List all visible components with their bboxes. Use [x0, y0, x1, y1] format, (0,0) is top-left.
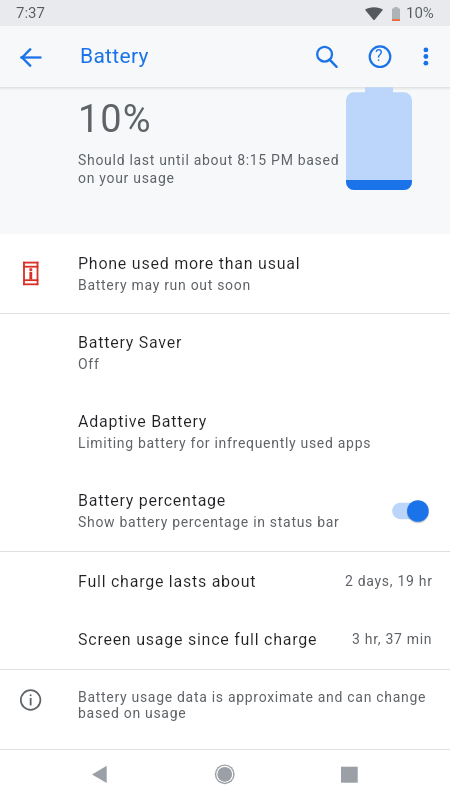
button[interactable]: Recents — [325, 750, 373, 798]
button[interactable]: Phone used more than usual — [0, 234, 450, 313]
staticText: based on usage — [78, 705, 187, 721]
staticText: Battery Saver — [78, 333, 183, 352]
staticText: ? — [375, 46, 383, 65]
button[interactable]: Back — [7, 33, 55, 81]
staticText: Battery percentage — [78, 491, 227, 510]
button[interactable]: Back — [75, 750, 123, 798]
staticText: Battery usage data is approximate and ca… — [78, 689, 427, 705]
staticText: Screen usage since full charge — [78, 630, 318, 649]
button[interactable]: Help — [356, 34, 404, 82]
button[interactable]: Home — [201, 750, 249, 798]
staticText: Battery — [80, 44, 149, 69]
button[interactable]: Search — [303, 34, 351, 82]
button[interactable]: Battery percentage — [0, 472, 450, 551]
staticText: Adaptive Battery — [78, 412, 208, 431]
staticText: 10% — [78, 97, 152, 142]
staticText: Limiting battery for infrequently used a… — [78, 435, 372, 451]
button[interactable]: More options — [402, 34, 450, 82]
staticText: Off — [78, 356, 100, 372]
staticText: 7:37 — [16, 4, 45, 22]
button[interactable]: Screen usage since full charge — [0, 611, 450, 669]
staticText: Should last until about 8:15 PM based — [78, 152, 340, 168]
staticText: Full charge lasts about — [78, 572, 257, 591]
staticText: 2 days, 19 hr — [345, 573, 433, 589]
button[interactable]: Full charge lasts about — [0, 552, 450, 611]
staticText: Phone used more than usual — [78, 254, 301, 273]
staticText: Show battery percentage in status bar — [78, 514, 340, 530]
staticText: 10% — [406, 4, 434, 22]
button[interactable]: Adaptive Battery — [0, 393, 450, 472]
staticText: 3 hr, 37 min — [352, 631, 433, 647]
staticText: on your usage — [78, 170, 175, 186]
button[interactable]: Battery Saver — [0, 314, 450, 393]
staticText: Battery may run out soon — [78, 277, 251, 293]
